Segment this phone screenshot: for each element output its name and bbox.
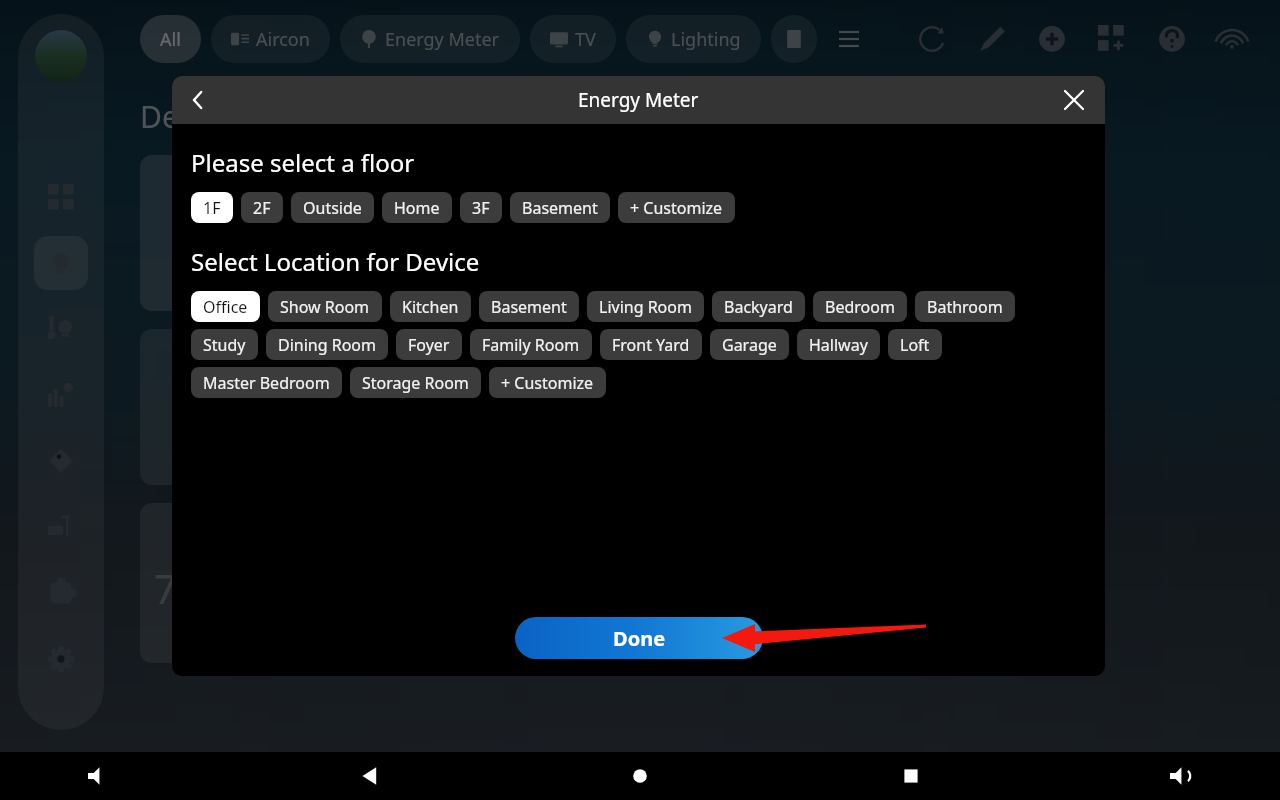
button[interactable]: Recents (882, 752, 940, 800)
button[interactable]: Foyer (396, 329, 462, 360)
button[interactable]: Volume up (1152, 752, 1210, 800)
staticText: Home (394, 197, 440, 219)
staticText: 1F (203, 197, 221, 219)
button[interactable]: 1F (191, 192, 233, 223)
button[interactable] (504, 155, 668, 311)
button[interactable]: Climate (34, 302, 88, 356)
button[interactable]: Wi-Fi (1202, 9, 1262, 69)
button[interactable]: Back (341, 752, 399, 800)
button[interactable]: 78.1 (504, 503, 668, 663)
staticText: Front Yard (612, 334, 690, 356)
button[interactable]: Bedroom (813, 291, 907, 322)
staticText: + Customize (630, 197, 723, 219)
button[interactable] (686, 155, 850, 311)
button[interactable]: Automations (34, 566, 88, 620)
button[interactable]: Loft (888, 329, 942, 360)
button[interactable] (140, 155, 304, 311)
button[interactable]: Profile (35, 30, 87, 82)
button[interactable]: Energy Meter (340, 15, 520, 63)
button[interactable]: Hallway (797, 329, 880, 360)
button[interactable] (771, 15, 817, 63)
staticText: Basement (522, 197, 598, 219)
staticText: Energy Meter (578, 87, 699, 113)
button[interactable]: All (140, 15, 201, 63)
staticText: Garage (722, 334, 777, 356)
button[interactable]: Back (176, 78, 220, 122)
button[interactable]: Study (191, 329, 258, 360)
button[interactable]: Front Yard (600, 329, 702, 360)
staticText: Backyard (724, 296, 793, 318)
button[interactable]: 77.9 (140, 503, 304, 663)
staticText: Basement (491, 296, 567, 318)
staticText: Office (203, 296, 248, 318)
staticText: Master Bedroom (203, 372, 330, 394)
button[interactable]: Bathroom (915, 291, 1015, 322)
button[interactable]: Statistics (34, 368, 88, 422)
button[interactable] (868, 155, 1032, 311)
button[interactable]: More categories (827, 17, 871, 61)
button[interactable]: 3F (460, 192, 502, 223)
button[interactable]: TV (530, 15, 616, 63)
button[interactable]: Lighting (626, 15, 761, 63)
button[interactable]: Basement (510, 192, 610, 223)
button[interactable]: Home (611, 752, 669, 800)
button[interactable]: Show Room (268, 291, 382, 322)
staticText: Study (203, 334, 246, 356)
staticText: Please select a floor (191, 146, 415, 179)
button[interactable]: 78.1 (686, 503, 850, 663)
staticText: 77.9 (154, 561, 234, 615)
button[interactable]: Storage Room (350, 367, 481, 398)
button[interactable]: Aircon (211, 15, 330, 63)
button[interactable]: Dining Room (266, 329, 388, 360)
button[interactable]: Living Room (587, 291, 704, 322)
staticText: All (160, 27, 181, 52)
button[interactable] (140, 329, 304, 485)
button[interactable]: Edit (962, 9, 1022, 69)
button[interactable]: Home (382, 192, 452, 223)
button[interactable]: Garage (710, 329, 789, 360)
button[interactable] (686, 329, 850, 485)
button[interactable]: Volume down (70, 752, 128, 800)
button[interactable]: 77.4 (868, 503, 1032, 663)
button[interactable]: Close (1053, 79, 1095, 121)
staticText: Devices (140, 96, 247, 137)
button[interactable]: Outside (291, 192, 374, 223)
staticText: Dining Room (278, 334, 376, 356)
button[interactable]: Basement (479, 291, 579, 322)
staticText: + Customize (501, 372, 594, 394)
button[interactable]: Dashboard (34, 170, 88, 224)
button[interactable]: Done (515, 617, 763, 659)
staticText: Lighting (671, 27, 741, 52)
staticText: Bedroom (825, 296, 895, 318)
staticText: Family Room (482, 334, 580, 356)
button[interactable]: 2F (241, 192, 283, 223)
button[interactable] (322, 329, 486, 485)
staticText: Living Room (599, 296, 692, 318)
button[interactable]: + Customize (618, 192, 735, 223)
button[interactable] (504, 329, 668, 485)
staticText: Show Room (280, 296, 370, 318)
button[interactable]: Backyard (712, 291, 805, 322)
staticText: Done (613, 625, 666, 652)
button[interactable]: Master Bedroom (191, 367, 342, 398)
button[interactable]: + Customize (489, 367, 606, 398)
staticText: Outside (303, 197, 362, 219)
button[interactable]: Office (191, 291, 260, 322)
button[interactable] (868, 329, 1032, 485)
button[interactable]: Kitchen (390, 291, 471, 322)
button[interactable]: Refresh (902, 9, 962, 69)
button[interactable]: Help (1142, 9, 1202, 69)
button[interactable] (322, 155, 486, 311)
button[interactable]: Add widget (1082, 9, 1142, 69)
button[interactable]: Add (1022, 9, 1082, 69)
button[interactable]: Family Room (470, 329, 592, 360)
staticText: Foyer (408, 334, 450, 356)
